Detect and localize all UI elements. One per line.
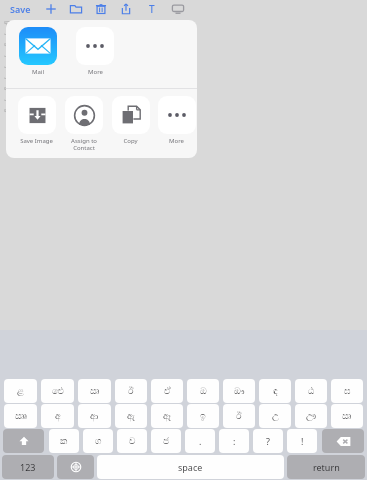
staticText: ඨ (308, 387, 315, 396)
staticText: ඖ (234, 387, 245, 396)
staticText: . (199, 435, 202, 447)
staticText: ඊ (236, 412, 242, 421)
staticText: ජ (163, 437, 170, 446)
staticText: Copy (123, 137, 138, 145)
button[interactable]: Share (119, 2, 133, 16)
button[interactable]: ඔ (187, 379, 219, 403)
button[interactable]: ඖ (223, 379, 255, 403)
button[interactable]: : (219, 429, 249, 453)
button[interactable]: Backspace (322, 429, 364, 453)
button[interactable]: Add (44, 2, 58, 16)
button[interactable]: Switch keyboard (57, 455, 94, 479)
staticText: Mail (32, 68, 44, 76)
button[interactable]: ඨ (295, 379, 327, 403)
button[interactable]: ඓ (41, 379, 74, 403)
button[interactable]: Mail (16, 27, 60, 76)
staticText: ! (301, 435, 304, 447)
button[interactable]: Assign to Contact (62, 96, 105, 152)
button[interactable]: ඊ (115, 379, 147, 403)
staticText: ක (60, 437, 68, 446)
button[interactable]: 123 (2, 455, 54, 479)
staticText: ඉ (200, 412, 206, 421)
staticText: ච (129, 437, 136, 446)
staticText: ආ (90, 412, 99, 421)
button[interactable]: ඇ (115, 404, 147, 428)
staticText: ඍ (342, 412, 352, 421)
button[interactable]: ඉ (187, 404, 219, 428)
button[interactable]: Save Image (15, 96, 58, 145)
staticText: ඈ (163, 412, 171, 421)
button[interactable]: Text format (145, 2, 159, 16)
staticText: return (313, 461, 340, 473)
staticText: : (233, 435, 236, 447)
button[interactable]: ක (49, 429, 79, 453)
staticText: ඔ (200, 387, 207, 396)
button[interactable]: ඎ (4, 404, 37, 428)
button[interactable]: Folder (69, 2, 83, 16)
staticText: ඎ (15, 412, 27, 421)
button[interactable]: return (287, 455, 365, 479)
staticText: ඍ (90, 387, 100, 396)
staticText: අ (55, 412, 61, 421)
staticText: ඒ (164, 387, 171, 396)
staticText: Save Image (20, 137, 53, 145)
button[interactable]: ඒ (151, 379, 183, 403)
staticText: ග (95, 437, 102, 446)
button[interactable]: ඍ (331, 404, 363, 428)
button[interactable]: . (185, 429, 215, 453)
staticText: T (149, 2, 155, 16)
button[interactable]: අ (41, 404, 74, 428)
button[interactable]: ඊ (223, 404, 255, 428)
staticText: ? (266, 435, 270, 447)
button[interactable]: space (97, 455, 284, 479)
staticText: Assign to Contact (71, 137, 97, 152)
button[interactable]: ඳ (259, 379, 291, 403)
button[interactable]: More (156, 96, 197, 145)
button[interactable]: ඍ (78, 379, 111, 403)
staticText: ඳ (273, 387, 278, 396)
button[interactable]: More (73, 27, 117, 76)
staticText: උ (272, 412, 279, 421)
staticText: ළ (17, 387, 24, 396)
button[interactable]: ච (117, 429, 147, 453)
button[interactable]: Delete (94, 2, 108, 16)
button[interactable]: Shift (3, 429, 44, 453)
button[interactable]: ඝ (331, 379, 363, 403)
button[interactable]: ආ (78, 404, 111, 428)
button[interactable]: උ (259, 404, 291, 428)
button[interactable]: ඈ (151, 404, 183, 428)
button[interactable]: ළ (4, 379, 37, 403)
staticText: ඝ (344, 387, 351, 396)
button[interactable]: ජ (151, 429, 181, 453)
staticText: ඊ (128, 387, 134, 396)
button[interactable]: Save (8, 3, 33, 15)
staticText: 123 (20, 461, 36, 473)
button[interactable]: ? (253, 429, 283, 453)
staticText: ඓ (52, 387, 64, 396)
staticText: ඇ (127, 412, 135, 421)
button[interactable]: ග (83, 429, 113, 453)
button[interactable]: ඌ (295, 404, 327, 428)
staticText: Save (10, 3, 31, 15)
staticText: ඌ (306, 412, 316, 421)
button[interactable]: Markup (171, 2, 185, 16)
staticText: space (178, 461, 203, 473)
button[interactable]: ! (287, 429, 317, 453)
staticText: More (88, 68, 103, 76)
button[interactable]: Copy (109, 96, 152, 145)
staticText: More (169, 137, 184, 145)
